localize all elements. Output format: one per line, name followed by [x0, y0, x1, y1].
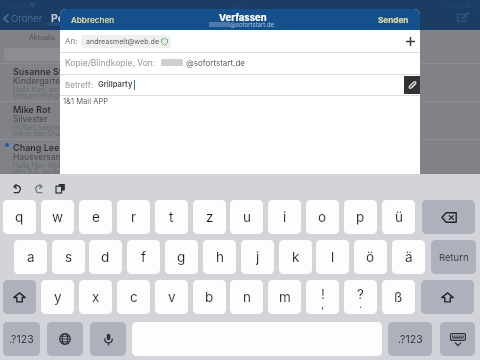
staticText: Po [51, 12, 65, 25]
button[interactable]: Chang Lee [0, 139, 480, 177]
staticText: ! [321, 286, 325, 302]
staticText: e [92, 209, 100, 225]
staticText: Aktualis [29, 33, 56, 41]
staticText: @sofortstart.de [186, 58, 245, 68]
staticText: f [141, 249, 146, 265]
staticText: 12:17 [233, 2, 249, 10]
button[interactable]: ! [306, 280, 339, 314]
button[interactable]: Dictate [90, 322, 126, 356]
button[interactable]: Ordner [3, 13, 43, 24]
button[interactable]: i [268, 200, 301, 234]
staticText: l [331, 249, 335, 265]
button[interactable]: j [241, 240, 274, 274]
staticText: andreasmelt@web.de [86, 37, 160, 46]
staticText: z [206, 209, 214, 225]
staticText: n [243, 289, 251, 305]
staticText: v [168, 289, 176, 305]
staticText: Susanne Stom [13, 66, 76, 77]
staticText: @sofortstart.de [230, 21, 275, 28]
button[interactable]: s [52, 240, 85, 274]
button[interactable]: Betreff: [60, 74, 420, 95]
button[interactable]: x [79, 280, 112, 314]
button[interactable]: An: [60, 30, 420, 52]
button[interactable]: Susanne Stom [0, 63, 480, 101]
button[interactable]: Mike Rot [0, 101, 480, 139]
staticText: ß [394, 289, 403, 305]
button[interactable]: Undo [12, 183, 23, 194]
button[interactable]: u [230, 200, 263, 234]
staticText: b [205, 289, 214, 305]
staticText: Versammlung im Mä [13, 91, 81, 99]
staticText: j [256, 249, 260, 265]
button[interactable]: ä [392, 240, 425, 274]
button[interactable]: ü [382, 200, 415, 234]
button[interactable]: Shift [421, 280, 474, 314]
button[interactable]: v [155, 280, 188, 314]
button[interactable]: d [89, 240, 122, 274]
button[interactable]: t [155, 200, 188, 234]
staticText: ö [366, 249, 375, 265]
button[interactable]: r [117, 200, 150, 234]
button[interactable]: m [268, 280, 301, 314]
button[interactable]: g [165, 240, 198, 274]
button[interactable]: Hide keyboard [440, 322, 475, 356]
button[interactable]: Attach file [404, 76, 420, 94]
staticText: , [321, 297, 325, 310]
button[interactable]: ? [344, 280, 377, 314]
button[interactable]: z [193, 200, 226, 234]
button[interactable]: q [3, 200, 36, 234]
button[interactable]: .?123 [3, 322, 40, 356]
button[interactable]: ß [382, 280, 415, 314]
staticText: g [177, 249, 186, 265]
staticText: h [216, 249, 224, 265]
staticText: Verfassen [219, 12, 267, 23]
button[interactable]: w [41, 200, 74, 234]
staticText: ä [405, 249, 413, 265]
staticText: k [292, 249, 300, 265]
button[interactable]: a [14, 240, 47, 274]
button[interactable]: Paste [55, 183, 66, 194]
button[interactable]: Abbrechen [65, 9, 121, 30]
button[interactable]: e [79, 200, 112, 234]
staticText: Hallo Karl, am Donn [13, 85, 79, 93]
staticText: w [52, 209, 64, 225]
staticText: Hausversammlu [13, 152, 78, 162]
button[interactable]: .?123 [388, 322, 432, 356]
button[interactable]: p [344, 200, 377, 234]
button[interactable]: Return [431, 240, 476, 274]
staticText: d [101, 249, 110, 265]
staticText: r [131, 209, 137, 225]
staticText: .?123 [398, 333, 423, 346]
button[interactable]: Backspace [422, 200, 475, 234]
button[interactable]: l [316, 240, 349, 274]
button[interactable]: f [127, 240, 160, 274]
staticText: Mike Rot [13, 104, 51, 115]
staticText: a [27, 249, 35, 265]
button[interactable]: Add recipient [401, 30, 419, 52]
button[interactable]: Compose [457, 12, 473, 25]
button[interactable]: Redo [33, 183, 44, 194]
button[interactable]: n [230, 280, 263, 314]
staticText: Hallo Herr Müller, bit [13, 161, 81, 169]
staticText: Kopie/Blindkopie, Von: [65, 58, 156, 68]
staticText: ? [357, 286, 364, 302]
button[interactable]: Kopie/Blindkopie, Von: [60, 52, 420, 73]
button[interactable]: Change keyboard [47, 322, 83, 356]
staticText: Hi Karl, könntest du [13, 123, 78, 131]
button[interactable]: ö [354, 240, 387, 274]
staticText: s [65, 249, 73, 265]
staticText: Chang Lee [13, 142, 60, 153]
staticText: i [283, 209, 287, 225]
button[interactable]: b [193, 280, 226, 314]
button[interactable]: h [203, 240, 236, 274]
staticText: mit in den Shaw lad [13, 129, 78, 137]
staticText: Silvester [13, 114, 48, 124]
button[interactable]: c [117, 280, 150, 314]
button[interactable]: y [41, 280, 74, 314]
button[interactable]: o [306, 200, 339, 234]
button[interactable]: k [279, 240, 312, 274]
staticText: y [54, 289, 62, 305]
button[interactable]: Senden [372, 9, 415, 30]
button[interactable]: Shift [3, 280, 36, 314]
